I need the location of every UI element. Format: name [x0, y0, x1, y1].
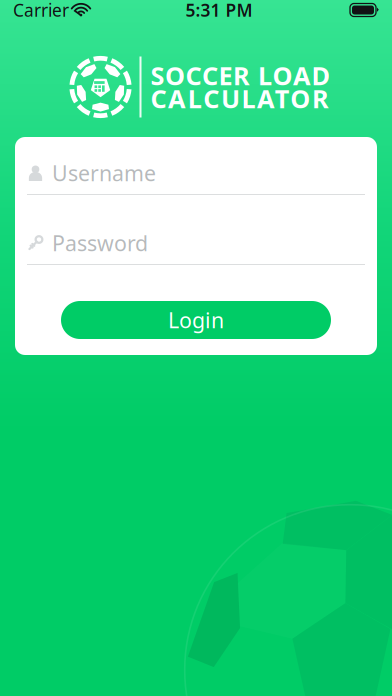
staticText: Login: [168, 306, 224, 334]
staticText: SOCCER LOAD: [150, 59, 330, 92]
staticText: Password: [52, 229, 148, 257]
staticText: 5:31 PM: [185, 0, 252, 21]
staticText: Carrier: [13, 0, 69, 21]
button[interactable]: Login: [61, 301, 331, 339]
staticText: CALCULATOR: [150, 82, 329, 115]
staticText: Username: [52, 159, 156, 187]
